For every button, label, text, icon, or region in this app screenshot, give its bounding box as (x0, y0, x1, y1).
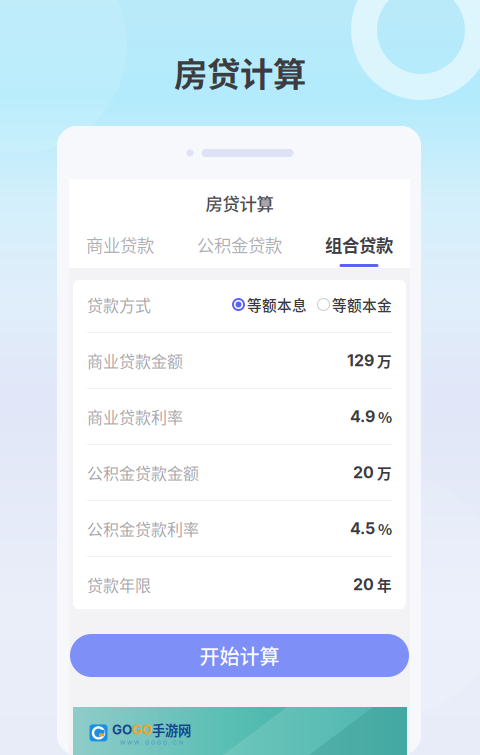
staticText: 手游网 (152, 720, 191, 739)
staticText: 组合贷款 (325, 232, 393, 257)
staticText: 房贷计算 (205, 190, 273, 216)
button[interactable]: 公积金贷款利率 (73, 501, 406, 556)
button[interactable]: 贷款年限 (73, 557, 406, 612)
button[interactable]: 贷款方式 (73, 277, 406, 332)
staticText: 年 (374, 574, 392, 595)
button[interactable]: 组合贷款 (324, 227, 394, 268)
staticText: 商业贷款利率 (87, 405, 183, 428)
button[interactable]: 商业贷款金额 (73, 333, 406, 388)
staticText: 商业贷款金额 (87, 349, 183, 372)
staticText: GO (132, 722, 152, 738)
staticText: 公积金贷款 (197, 232, 282, 257)
staticText: 129 (347, 351, 374, 370)
button[interactable]: 公积金贷款金额 (73, 445, 406, 500)
staticText: 等额本金 (332, 294, 392, 315)
staticText: % (375, 406, 392, 427)
staticText: GO (112, 722, 132, 738)
staticText: 等额本息 (247, 294, 307, 315)
button[interactable]: 商业贷款利率 (73, 389, 406, 444)
staticText: 贷款方式 (87, 293, 151, 316)
staticText: 4.9 (350, 407, 375, 426)
button[interactable]: 公积金贷款 (195, 227, 283, 268)
staticText: 4.5 (350, 519, 375, 538)
staticText: 公积金贷款利率 (87, 517, 199, 540)
button[interactable]: 开始计算 (70, 634, 409, 677)
staticText: 商业贷款 (86, 232, 154, 257)
staticText: 20 (353, 463, 374, 482)
staticText: W W W . G O G O . C N (120, 739, 183, 746)
staticText: 万 (374, 350, 392, 371)
staticText: 贷款年限 (87, 573, 151, 596)
staticText: 20 (353, 575, 374, 594)
staticText: 万 (374, 462, 392, 483)
button[interactable]: 商业贷款 (85, 227, 155, 268)
staticText: 开始计算 (199, 641, 279, 670)
staticText: 公积金贷款金额 (87, 461, 199, 484)
staticText: % (375, 518, 392, 539)
staticText: 房贷计算 (174, 48, 306, 96)
